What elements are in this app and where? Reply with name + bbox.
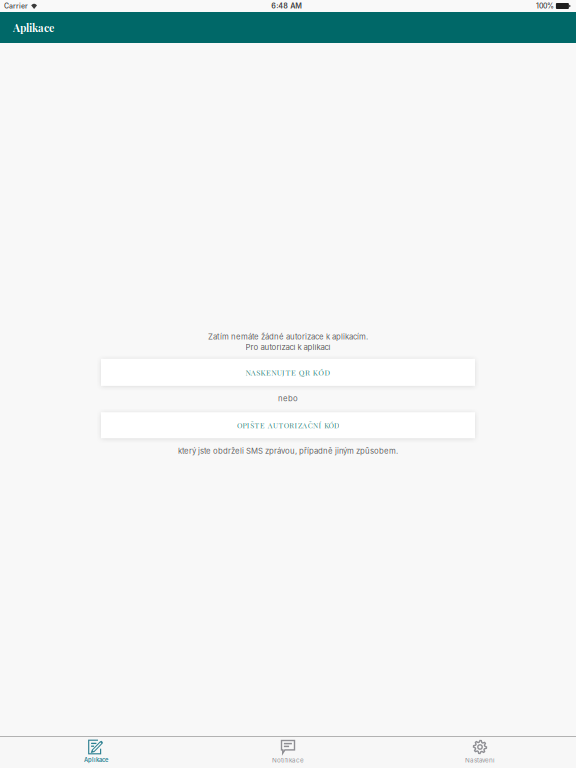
button[interactable]: Notifikace <box>192 736 384 768</box>
staticText: Carrier <box>4 2 28 10</box>
staticText: NASKENUJTE QR KÓD <box>245 367 331 377</box>
staticText: OPIŠTE AUTORIZAČNÍ KÓD <box>237 420 339 430</box>
button[interactable]: Nastavení <box>384 736 576 768</box>
staticText: Nastavení <box>465 756 495 764</box>
button[interactable]: OPIŠTE AUTORIZAČNÍ KÓD <box>101 412 475 438</box>
button[interactable]: Aplikace <box>0 736 192 768</box>
staticText: Aplikace <box>84 756 108 763</box>
staticText: který jste obdrželi SMS zprávou, případn… <box>178 446 398 456</box>
staticText: Zatím nemáte žádné autorizace k aplikací… <box>208 332 368 341</box>
staticText: 100% <box>536 2 554 10</box>
staticText: 6:48 AM <box>271 2 302 10</box>
staticText: Notifikace <box>272 756 304 764</box>
button[interactable]: NASKENUJTE QR KÓD <box>101 359 475 386</box>
staticText: Pro autorizaci k aplikaci <box>245 342 330 352</box>
staticText: Aplikace <box>13 20 54 35</box>
staticText: nebo <box>278 394 298 403</box>
